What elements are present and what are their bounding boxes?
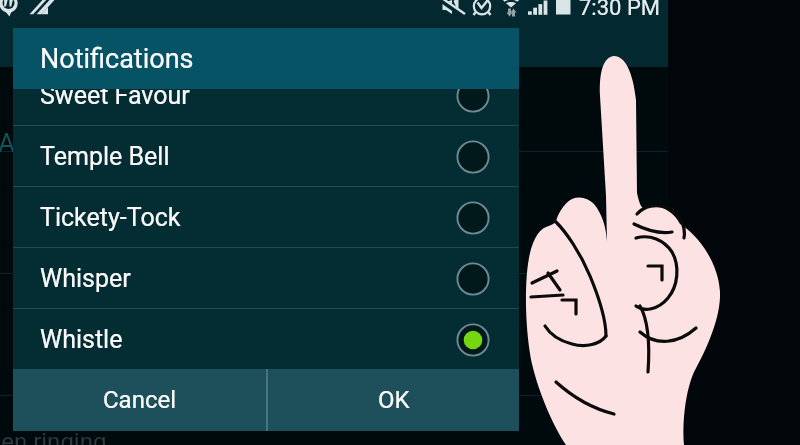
staticText: AN — [0, 128, 34, 158]
staticText: Whistle — [40, 325, 123, 354]
button[interactable]: Sweet Favour — [13, 89, 519, 126]
button[interactable]: Temple Bell — [13, 126, 519, 187]
staticText: 7:30 PM — [579, 0, 660, 17]
button[interactable]: Cancel — [13, 369, 266, 431]
staticText: Cancel — [103, 386, 177, 414]
staticText: Tickety-Tock — [40, 203, 181, 232]
button[interactable]: Whisper — [13, 248, 519, 309]
staticText: OK — [378, 386, 410, 414]
button[interactable]: Whistle — [13, 309, 519, 369]
button[interactable]: Tickety-Tock — [13, 187, 519, 248]
staticText: hen ringing — [0, 428, 107, 445]
staticText: Sweet Favour — [40, 89, 190, 110]
button[interactable]: OK — [268, 369, 519, 431]
staticText: Whisper — [40, 264, 131, 293]
staticText: Notifications — [40, 43, 194, 75]
staticText: Temple Bell — [40, 142, 170, 171]
